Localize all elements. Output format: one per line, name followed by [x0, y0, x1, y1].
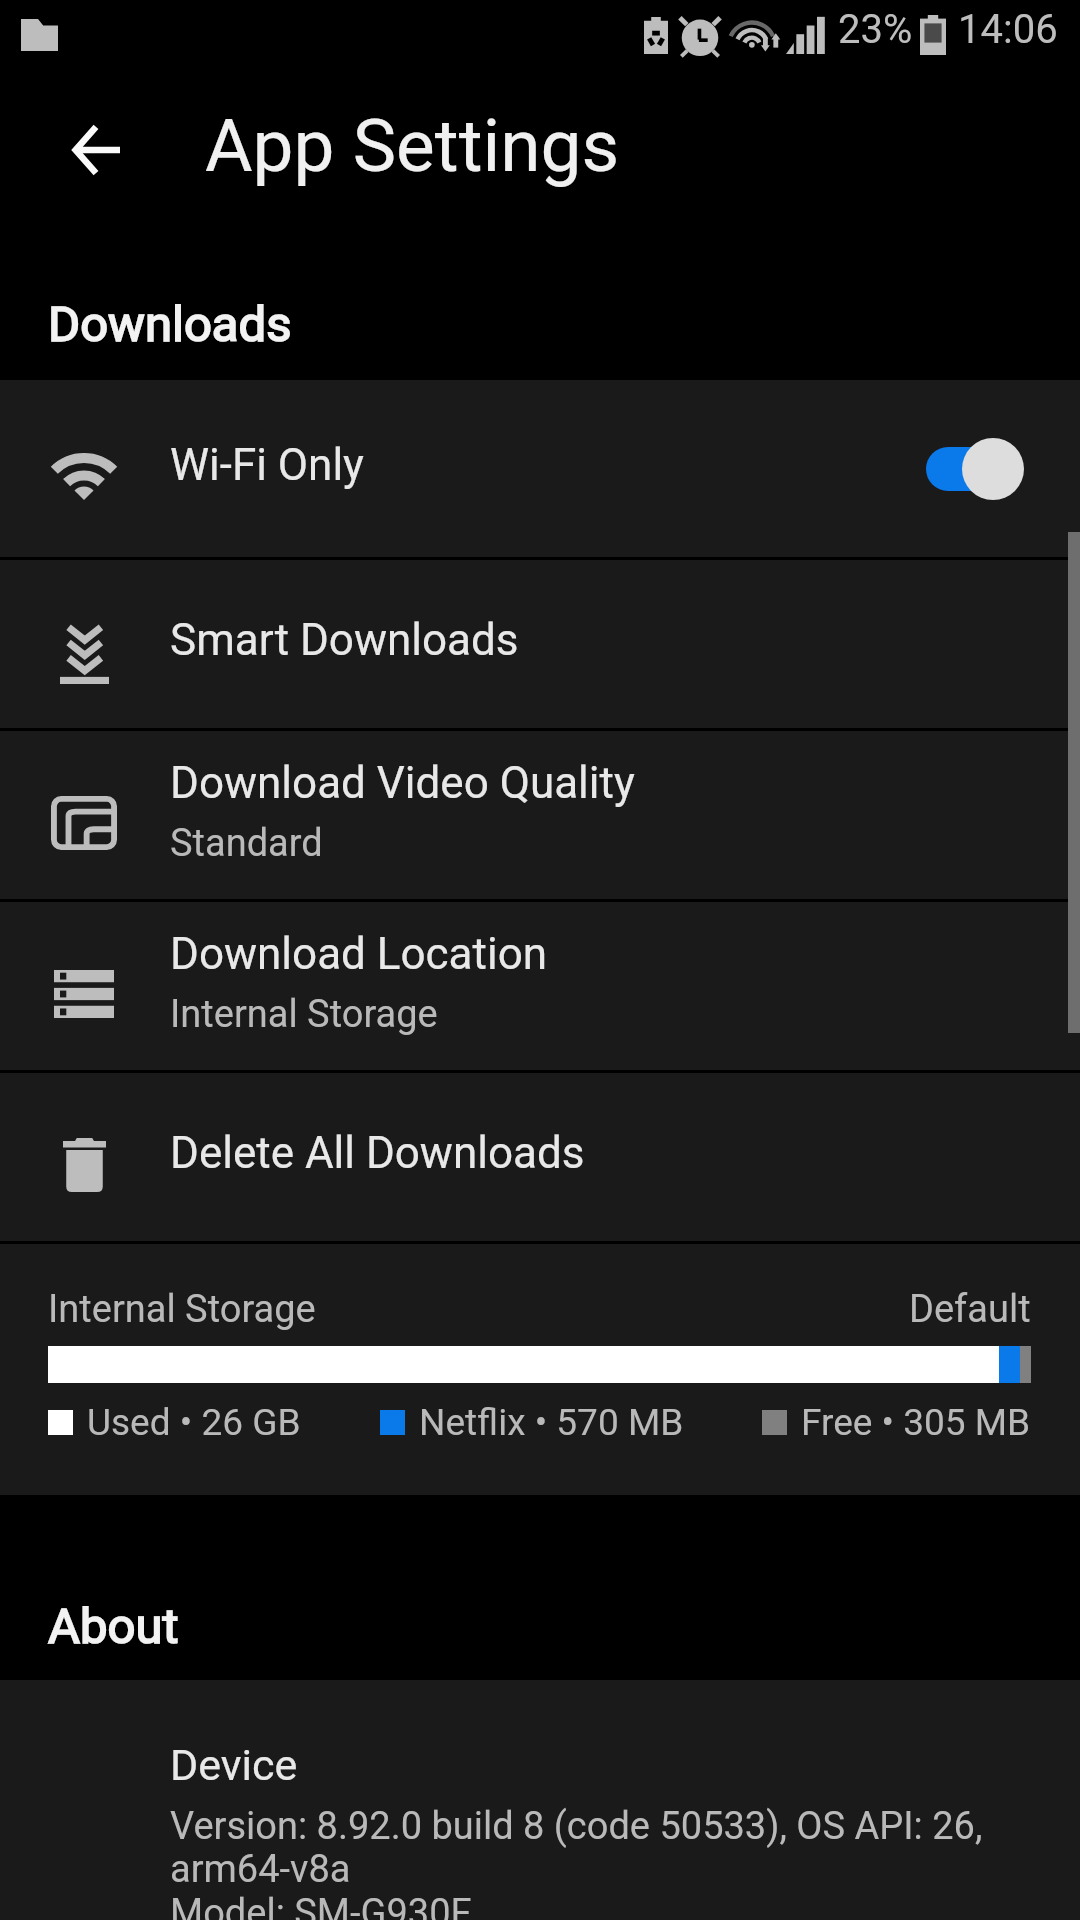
staticText: Used • 26 GB [87, 1401, 301, 1444]
staticText: Standard [170, 821, 323, 866]
staticText: Delete All Downloads [170, 1127, 585, 1179]
staticText: About [48, 1598, 179, 1655]
staticText: Version: 8.92.0 build 8 (code 50533), OS… [170, 1804, 1020, 1920]
button[interactable]: Delete All Downloads [0, 1073, 1080, 1241]
staticText: Free • 305 MB [801, 1401, 1031, 1444]
staticText: Default [909, 1287, 1031, 1332]
button[interactable]: Wi-Fi Only [0, 380, 1080, 557]
button[interactable]: Download Video Quality [0, 731, 1080, 899]
button[interactable]: Back [46, 100, 146, 200]
staticText: Internal Storage [48, 1287, 316, 1332]
staticText: Download Location [170, 928, 548, 980]
staticText: 23% [838, 6, 913, 53]
staticText: Internal Storage [170, 992, 438, 1037]
staticText: App Settings [205, 103, 620, 189]
staticText: Downloads [48, 296, 292, 353]
button[interactable]: Smart Downloads [0, 560, 1080, 728]
staticText: 14:06 [958, 6, 1058, 53]
staticText: Smart Downloads [170, 614, 519, 666]
staticText: Netflix • 570 MB [419, 1401, 684, 1444]
staticText: Wi-Fi Only [170, 439, 926, 491]
button[interactable]: Download Location [0, 902, 1080, 1070]
staticText: Download Video Quality [170, 757, 635, 809]
staticText: Device [170, 1740, 298, 1790]
